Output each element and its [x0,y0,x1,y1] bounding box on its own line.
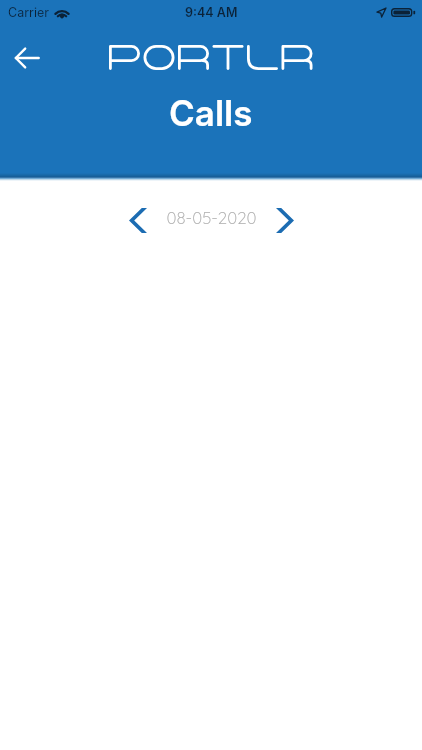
staticText: 9:44 AM [185,5,238,20]
button[interactable]: Previous day [122,197,153,243]
staticText: Carrier [8,5,49,20]
staticText: 08-05-2020 [166,207,257,228]
button[interactable]: Back [6,37,47,78]
button[interactable]: Next day [269,197,300,243]
staticText: Calls [169,92,253,134]
